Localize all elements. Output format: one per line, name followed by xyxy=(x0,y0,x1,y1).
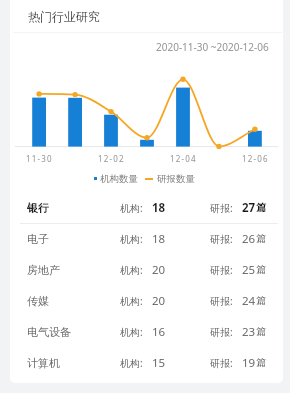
staticText: 12-04 xyxy=(170,153,197,164)
staticText: 机构: xyxy=(120,232,143,246)
staticText: 研报: xyxy=(210,294,233,308)
button[interactable]: 银行 xyxy=(10,192,283,223)
staticText: 15 xyxy=(152,355,166,371)
staticText: 研报: xyxy=(210,356,233,370)
staticText: 研报数量 xyxy=(157,173,195,185)
staticText: 16 xyxy=(152,324,166,340)
staticText: 25 xyxy=(242,262,256,278)
staticText: 19 xyxy=(242,355,256,371)
staticText: 篇 xyxy=(256,325,266,338)
staticText: 篇 xyxy=(256,356,266,369)
staticText: 研报: xyxy=(210,232,233,246)
staticText: 机构: xyxy=(120,356,143,370)
staticText: 12-06 xyxy=(242,153,269,164)
staticText: 18 xyxy=(152,200,166,216)
staticText: 24 xyxy=(242,293,256,309)
staticText: 18 xyxy=(152,231,166,247)
staticText: 传媒 xyxy=(27,294,49,308)
staticText: 研报: xyxy=(210,201,233,215)
staticText: 12-02 xyxy=(98,153,125,164)
staticText: 研报: xyxy=(210,263,233,277)
staticText: 机构: xyxy=(120,294,143,308)
staticText: 20 xyxy=(152,262,166,278)
staticText: 26 xyxy=(242,231,256,247)
button[interactable]: 电子 xyxy=(10,223,283,254)
staticText: 20 xyxy=(152,293,166,309)
staticText: 机构: xyxy=(120,325,143,339)
button[interactable]: 房地产 xyxy=(10,254,283,285)
staticText: 机构: xyxy=(120,201,143,215)
staticText: 计算机 xyxy=(27,356,60,370)
staticText: 篇 xyxy=(256,232,266,245)
button[interactable]: 电气设备 xyxy=(10,316,283,347)
staticText: 27 xyxy=(242,200,256,216)
staticText: 电气设备 xyxy=(27,325,71,339)
staticText: 篇 xyxy=(256,294,266,307)
staticText: 篇 xyxy=(256,201,266,214)
staticText: 11-30 xyxy=(26,153,53,164)
staticText: 研报: xyxy=(210,325,233,339)
staticText: 机构: xyxy=(120,263,143,277)
staticText: 机构数量 xyxy=(100,173,138,185)
staticText: 房地产 xyxy=(27,263,60,277)
staticText: 银行 xyxy=(27,201,49,215)
staticText: 23 xyxy=(242,324,256,340)
staticText: 热门行业研究 xyxy=(28,9,100,24)
staticText: 2020-11-30 ~2020-12-06 xyxy=(156,40,269,54)
staticText: 电子 xyxy=(27,232,49,246)
button[interactable]: 传媒 xyxy=(10,285,283,316)
button[interactable]: 计算机 xyxy=(10,347,283,378)
staticText: 篇 xyxy=(256,263,266,276)
